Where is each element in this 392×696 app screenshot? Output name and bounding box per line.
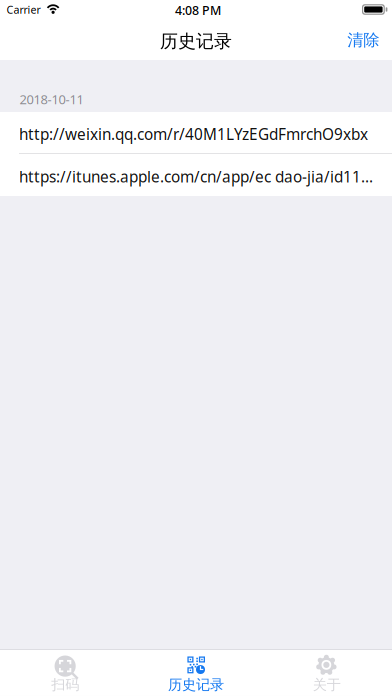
staticText: http://weixin.qq.com/r/40M1LYzEGdFmrchO9… bbox=[19, 124, 368, 145]
button[interactable]: 扫码 bbox=[0, 650, 131, 696]
button[interactable]: http://weixin.qq.com/r/40M1LYzEGdFmrchO9… bbox=[0, 112, 392, 154]
button[interactable]: 关于 bbox=[261, 650, 392, 696]
button[interactable]: 清除 bbox=[316, 19, 392, 60]
staticText: 4:08 PM bbox=[175, 2, 221, 19]
staticText: 扫码 bbox=[51, 676, 79, 694]
staticText: https://itunes.apple.com/cn/app/ec dao-j… bbox=[19, 166, 373, 187]
button[interactable]: https://itunes.apple.com/cn/app/ec dao-j… bbox=[0, 154, 392, 196]
staticText: 2018-10-11 bbox=[19, 90, 83, 108]
button[interactable]: 历史记录 bbox=[131, 650, 261, 696]
staticText: 历史记录 bbox=[168, 676, 224, 694]
staticText: 历史记录 bbox=[160, 30, 232, 52]
staticText: Carrier bbox=[7, 2, 41, 17]
staticText: 关于 bbox=[313, 676, 341, 694]
staticText: 清除 bbox=[347, 30, 379, 50]
